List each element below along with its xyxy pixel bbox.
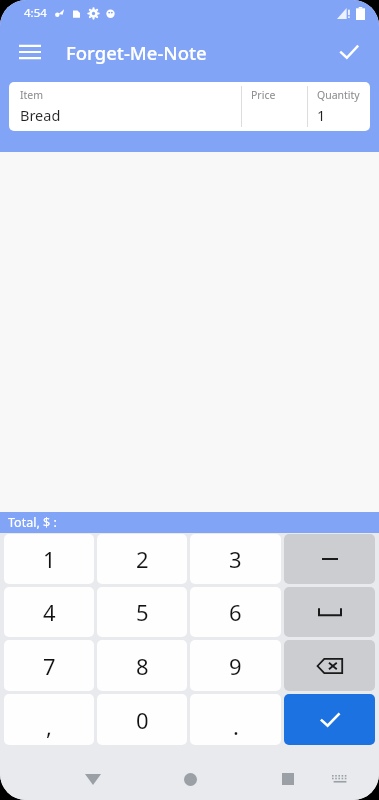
staticText: 3 — [229, 544, 242, 574]
staticText: Item — [20, 88, 44, 102]
button[interactable]: 0 — [97, 694, 187, 745]
staticText: Quantity — [317, 88, 360, 102]
button[interactable]: 1 — [4, 534, 94, 584]
button[interactable]: 8 — [97, 640, 187, 691]
button[interactable]: Space — [284, 587, 375, 637]
staticText: 8 — [136, 651, 149, 681]
staticText: 2 — [136, 544, 149, 574]
button[interactable]: Item — [9, 82, 370, 131]
button[interactable]: Backspace — [284, 640, 375, 691]
staticText: 4 — [43, 597, 56, 627]
button[interactable]: Back — [78, 764, 108, 794]
button[interactable]: 5 — [97, 587, 187, 637]
button[interactable]: Keyboard — [325, 764, 355, 794]
button[interactable]: Recents — [273, 764, 303, 794]
button[interactable]: . — [190, 694, 281, 745]
staticText: , — [46, 711, 52, 741]
staticText: 5 — [136, 597, 149, 627]
staticText: . — [233, 711, 239, 741]
button[interactable]: 7 — [4, 640, 94, 691]
button[interactable]: , — [4, 694, 94, 745]
staticText: Bread — [20, 105, 61, 125]
staticText: 0 — [136, 705, 149, 735]
button[interactable]: Menu — [8, 30, 52, 74]
staticText: 6 — [229, 597, 242, 627]
staticText: 7 — [43, 651, 56, 681]
button[interactable]: 3 — [190, 534, 281, 584]
button[interactable]: 2 — [97, 534, 187, 584]
button[interactable]: 9 — [190, 640, 281, 691]
button[interactable]: 6 — [190, 587, 281, 637]
button[interactable]: Minus — [284, 534, 375, 584]
staticText: Forget-Me-Note — [66, 40, 207, 65]
staticText: 1 — [43, 544, 56, 574]
button[interactable]: Save — [327, 30, 371, 74]
staticText: Price — [251, 88, 276, 102]
button[interactable]: 4 — [4, 587, 94, 637]
staticText: 9 — [229, 651, 242, 681]
staticText: 1 — [317, 105, 326, 125]
staticText: 4:54 — [24, 5, 47, 21]
button[interactable]: Confirm — [284, 694, 375, 745]
button[interactable]: Home — [175, 764, 205, 794]
staticText: Total, $ : — [8, 514, 57, 531]
